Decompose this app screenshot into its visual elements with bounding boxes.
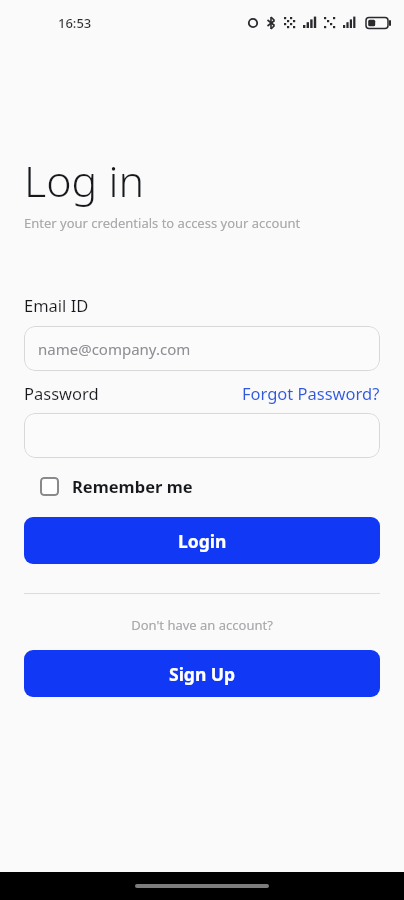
staticText: Forgot Password?	[242, 382, 380, 404]
button[interactable]: Remember me	[24, 473, 201, 499]
staticText: name@company.com	[38, 339, 191, 359]
staticText: Sign Up	[169, 662, 236, 686]
staticText: Login	[178, 529, 227, 553]
button[interactable]	[24, 413, 380, 458]
staticText: Password	[24, 382, 99, 404]
staticText: Don't have an account?	[24, 616, 380, 634]
staticText: Log in	[24, 151, 145, 210]
staticText: Enter your credentials to access your ac…	[24, 214, 301, 232]
staticText: Remember me	[72, 475, 193, 497]
button[interactable]: Sign Up	[24, 650, 380, 697]
button[interactable]: Login	[24, 517, 380, 564]
other: Home gesture	[135, 884, 269, 888]
button[interactable]: Forgot Password?	[242, 382, 380, 404]
staticText: Email ID	[24, 294, 89, 316]
button[interactable]: name@company.com	[24, 326, 380, 371]
staticText: 16:53	[58, 14, 92, 32]
